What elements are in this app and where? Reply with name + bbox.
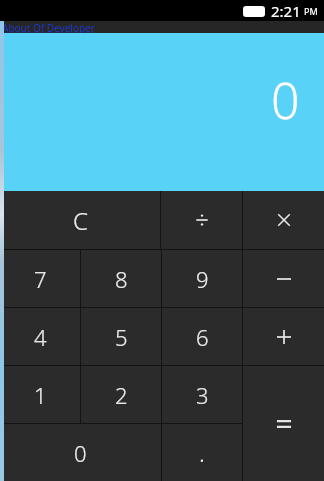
button[interactable]: Six (162, 308, 242, 365)
button[interactable]: Three (162, 366, 242, 423)
button[interactable]: Multiply (243, 191, 324, 249)
button[interactable]: Zero (0, 424, 161, 481)
button[interactable]: Add (243, 308, 324, 365)
staticText: About Of Developer (2, 21, 95, 33)
staticText: 5 (115, 322, 128, 352)
button[interactable]: Four (0, 308, 80, 365)
staticText: 7 (34, 264, 47, 294)
staticText: 1 (34, 380, 47, 410)
staticText: 2:21 (271, 1, 301, 21)
button[interactable]: One (0, 366, 80, 423)
staticText: PM (304, 5, 318, 17)
staticText: 3 (196, 380, 209, 410)
button[interactable]: Decimal point (162, 424, 242, 481)
button[interactable]: Two (81, 366, 161, 423)
button[interactable]: Clear (0, 191, 160, 249)
button[interactable]: Nine (162, 250, 242, 307)
staticText: 6 (196, 322, 209, 352)
staticText: 2 (115, 380, 128, 410)
staticText: 0 (74, 438, 87, 468)
button[interactable]: Equals (243, 366, 324, 481)
button[interactable]: Divide (161, 191, 242, 249)
button[interactable]: About Of Developer (0, 21, 324, 33)
button[interactable]: Five (81, 308, 161, 365)
staticText: 9 (196, 264, 209, 294)
staticText: 4 (34, 322, 47, 352)
button[interactable]: Seven (0, 250, 80, 307)
button[interactable]: Eight (81, 250, 161, 307)
button[interactable]: Subtract (243, 250, 324, 307)
staticText: . (199, 436, 205, 469)
staticText: 8 (115, 264, 128, 294)
staticText: 0 (271, 66, 300, 134)
staticText: C (73, 204, 88, 237)
